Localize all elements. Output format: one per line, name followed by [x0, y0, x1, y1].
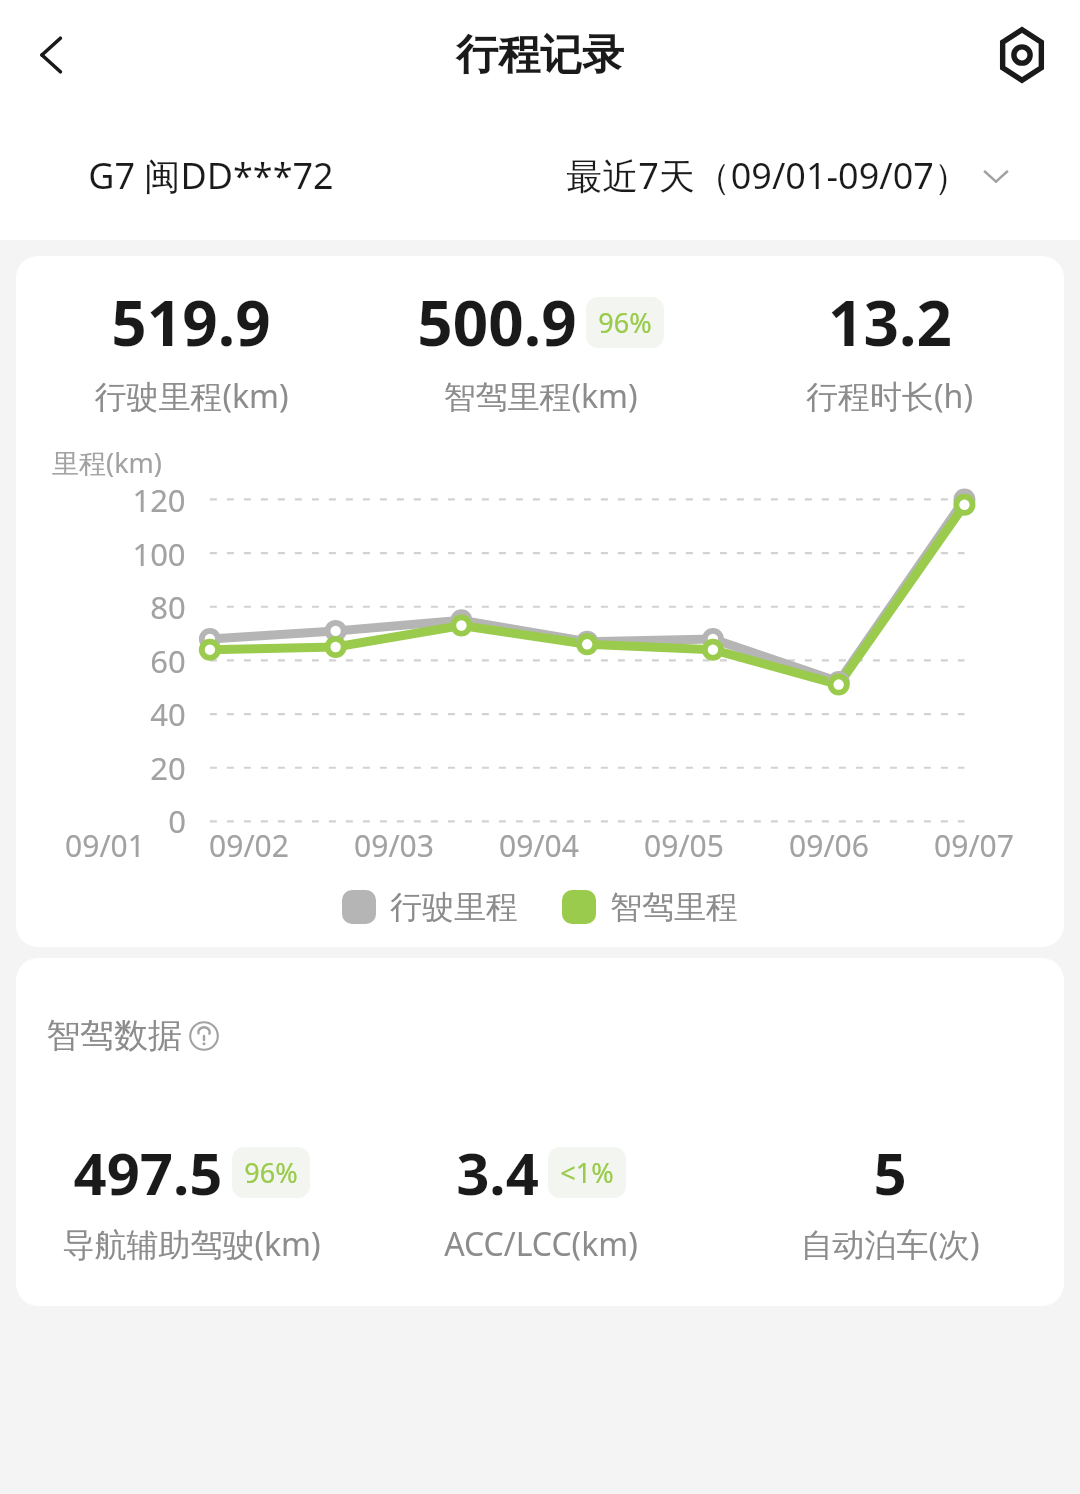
button[interactable]: 智驾里程: [562, 887, 738, 927]
staticText: 行驶里程(km): [94, 374, 289, 418]
staticText: 3.4: [456, 1133, 539, 1212]
staticText: 09/03: [354, 825, 434, 866]
staticText: 40: [150, 693, 186, 735]
staticText: 96%: [598, 304, 652, 341]
button[interactable]: Settings: [984, 17, 1060, 93]
staticText: 09/06: [789, 825, 869, 866]
staticText: 09/05: [644, 825, 724, 866]
button[interactable]: G7 闽DD***72: [88, 151, 334, 200]
button[interactable]: 行驶里程: [342, 887, 518, 927]
button[interactable]: 最近7天（09/01-09/07）: [566, 151, 1010, 200]
staticText: 500.9: [417, 280, 577, 364]
staticText: 行驶里程: [390, 887, 518, 927]
button[interactable]: 519.9: [16, 280, 366, 418]
staticText: 智驾里程: [610, 887, 738, 927]
staticText: 智驾数据: [46, 1014, 182, 1057]
staticText: 09/01: [65, 825, 145, 866]
staticText: 60: [150, 640, 186, 682]
staticText: ACC/LCC(km): [444, 1222, 638, 1266]
staticText: 里程(km): [52, 444, 162, 481]
staticText: G7 闽DD***72: [88, 151, 334, 200]
button[interactable]: Back: [14, 17, 90, 93]
staticText: 行程时长(h): [806, 374, 973, 418]
staticText: 13.2: [828, 280, 952, 364]
staticText: 120: [132, 479, 186, 521]
staticText: 80: [150, 586, 186, 628]
button[interactable]: 3.4: [366, 1133, 715, 1266]
staticText: 行程记录: [456, 29, 624, 82]
staticText: 智驾里程(km): [443, 374, 638, 418]
staticText: 497.5: [73, 1133, 223, 1212]
staticText: 09/07: [934, 825, 1014, 866]
button[interactable]: 497.5: [16, 1133, 366, 1266]
button[interactable]: 智驾数据: [46, 1014, 219, 1057]
staticText: 5: [873, 1133, 907, 1212]
staticText: 导航辅助驾驶(km): [62, 1222, 321, 1266]
button[interactable]: 5: [715, 1133, 1064, 1266]
staticText: 0: [168, 800, 186, 842]
button[interactable]: 500.9: [366, 280, 715, 418]
staticText: 自动泊车(次): [800, 1222, 980, 1266]
staticText: 519.9: [111, 280, 271, 364]
staticText: 09/02: [209, 825, 289, 866]
staticText: 最近7天（09/01-09/07）: [566, 151, 970, 200]
staticText: 100: [132, 533, 186, 575]
staticText: 96%: [244, 1154, 298, 1191]
button[interactable]: 13.2: [715, 280, 1064, 418]
staticText: 20: [150, 747, 186, 789]
staticText: <1%: [560, 1154, 614, 1191]
staticText: 09/04: [499, 825, 579, 866]
